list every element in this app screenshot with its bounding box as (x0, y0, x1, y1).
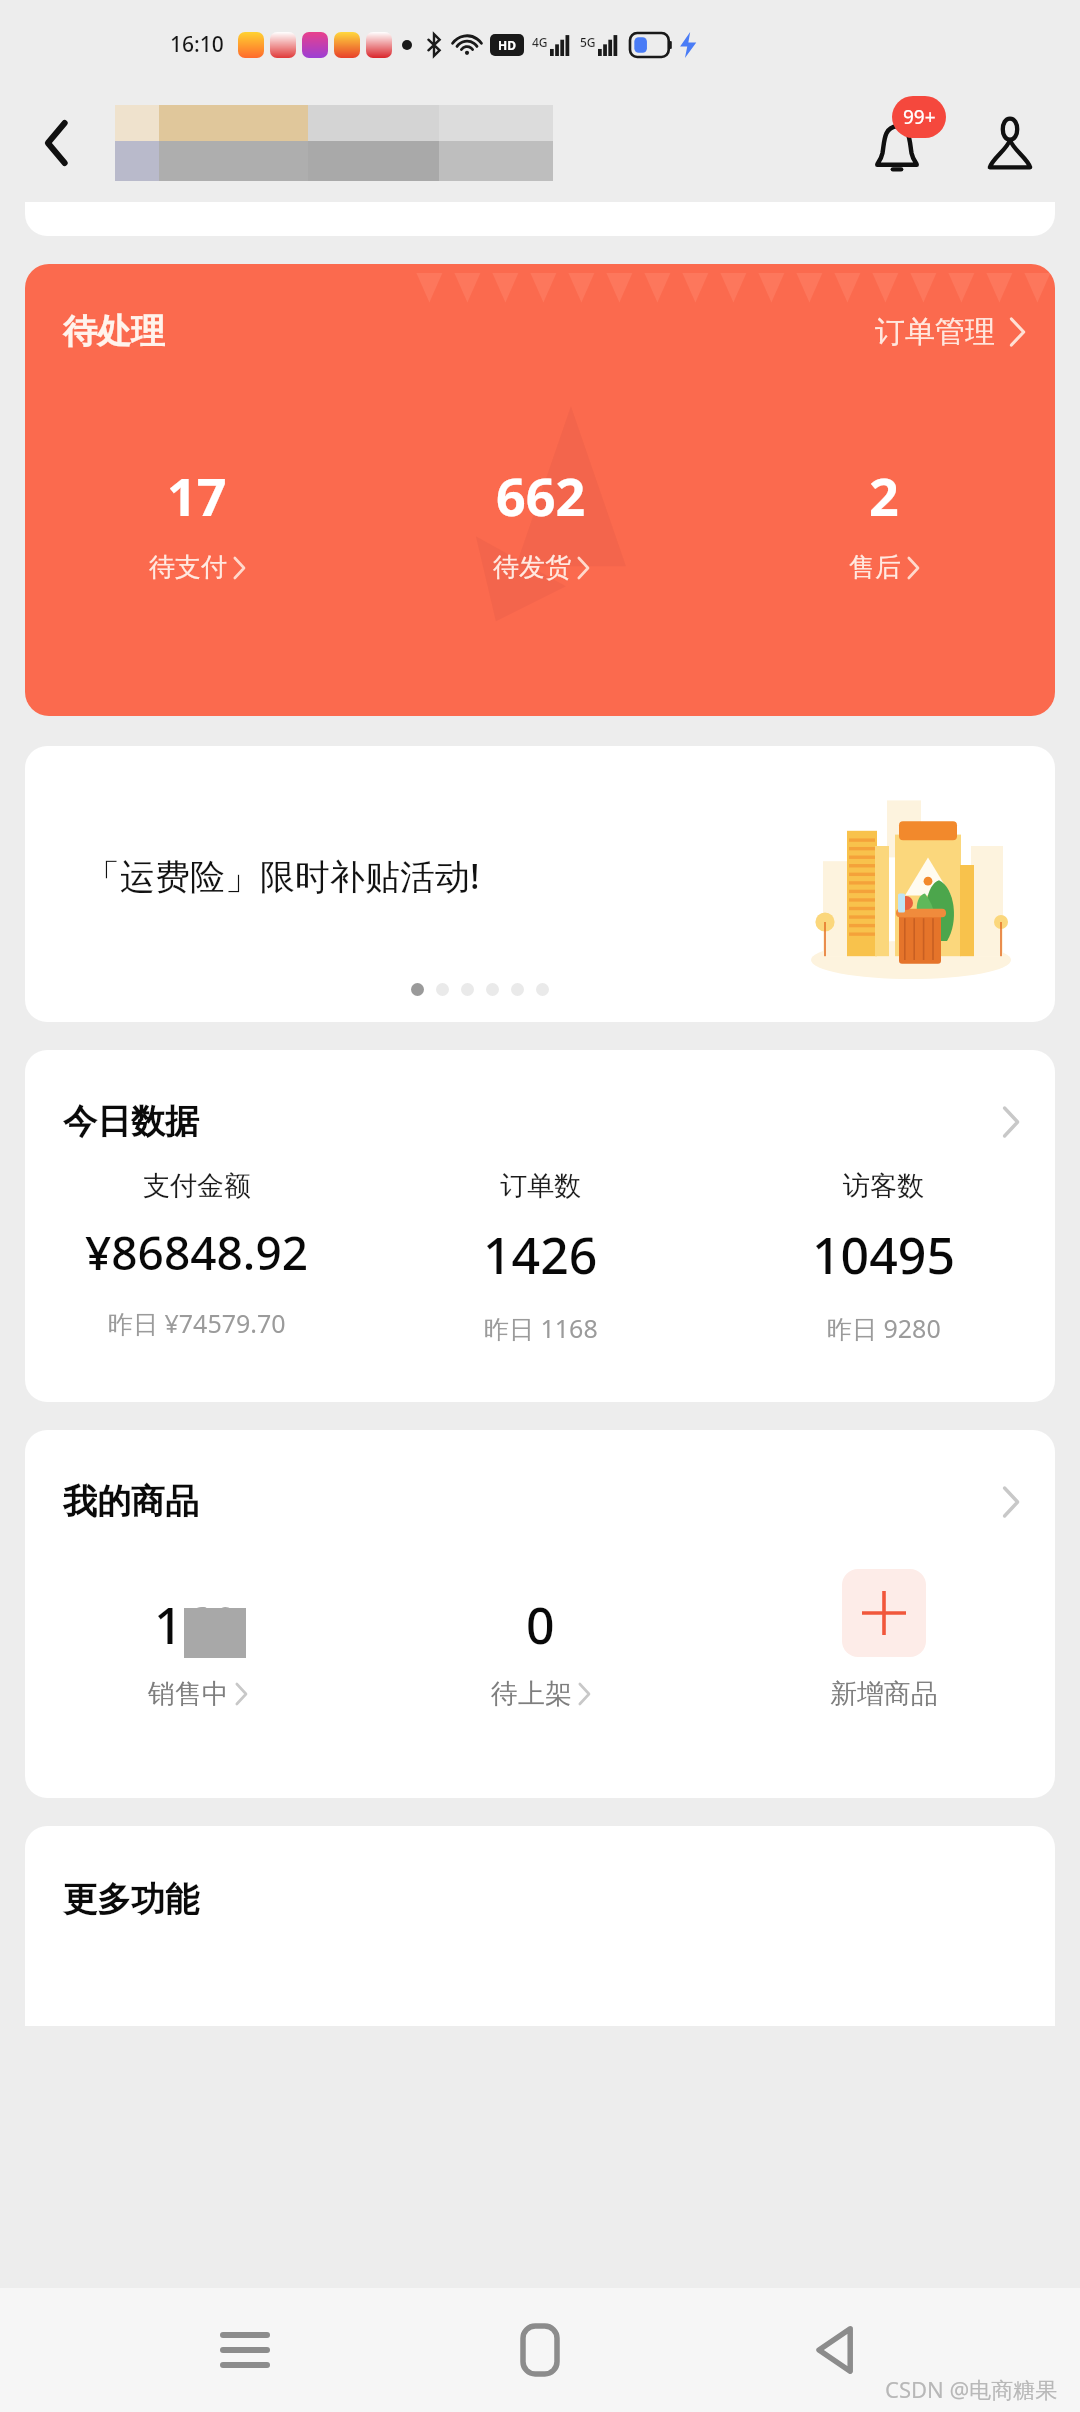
staticText: ¥86848.92 (85, 1221, 309, 1284)
staticText: 更多功能 (63, 1878, 199, 1921)
button[interactable]: 今日数据 (25, 1050, 1055, 1402)
button[interactable]: 168 (25, 1591, 369, 1711)
button[interactable]: 新增商品 (712, 1569, 1055, 1711)
button[interactable]: Notifications (854, 100, 940, 186)
staticText: 168 (154, 1591, 240, 1659)
button[interactable]: 0 (369, 1591, 712, 1711)
staticText: 2 (869, 460, 899, 531)
button[interactable]: Back (785, 2300, 885, 2400)
staticText: 支付金额 (143, 1169, 251, 1203)
button[interactable]: Recents (195, 2300, 295, 2400)
staticText: 662 (496, 460, 586, 531)
button[interactable]: 我的商品 (25, 1430, 1055, 1798)
staticText: 今日数据 (63, 1100, 199, 1143)
button[interactable]: 订单管理 (875, 313, 1025, 351)
staticText: CSDN @电商糖果 (885, 2374, 1058, 2404)
staticText: 待支付 (149, 551, 227, 584)
staticText: HD (498, 37, 516, 53)
staticText: 5G (580, 34, 596, 50)
staticText: 4G (532, 34, 548, 50)
staticText: 昨日 9280 (827, 1311, 941, 1345)
staticText: 1426 (483, 1221, 598, 1289)
staticText: 待发货 (493, 551, 571, 584)
staticText: 16:10 (170, 30, 224, 59)
staticText: 访客数 (843, 1169, 924, 1203)
staticText: 「运费险」限时补贴活动! (85, 852, 480, 900)
staticText: 待上架 (491, 1677, 572, 1711)
button[interactable]: 更多功能 (25, 1826, 1055, 2026)
button[interactable]: Profile (970, 103, 1050, 183)
button[interactable]: 2 (712, 460, 1055, 584)
staticText: 订单数 (500, 1169, 581, 1203)
staticText: 0 (526, 1591, 555, 1659)
button[interactable]: Home (490, 2300, 590, 2400)
staticText: 销售中 (148, 1677, 229, 1711)
staticText: 昨日 1168 (484, 1311, 598, 1345)
staticText: 我的商品 (63, 1480, 199, 1523)
staticText: 99+ (903, 104, 936, 130)
staticText: 待处理 (63, 310, 165, 353)
button[interactable]: Back (22, 108, 92, 178)
staticText: 17 (167, 460, 227, 531)
staticText: 售后 (849, 551, 901, 584)
button[interactable]: 待处理 (25, 264, 1055, 716)
button[interactable]: 17 (25, 460, 369, 584)
button[interactable]: 「运费险」限时补贴活动! (25, 746, 1055, 1022)
button[interactable]: 662 (369, 460, 712, 584)
staticText: 昨日 ¥74579.70 (108, 1306, 286, 1340)
staticText: 新增商品 (830, 1677, 938, 1711)
staticText: 10495 (812, 1221, 955, 1289)
staticText: 订单管理 (875, 313, 995, 351)
